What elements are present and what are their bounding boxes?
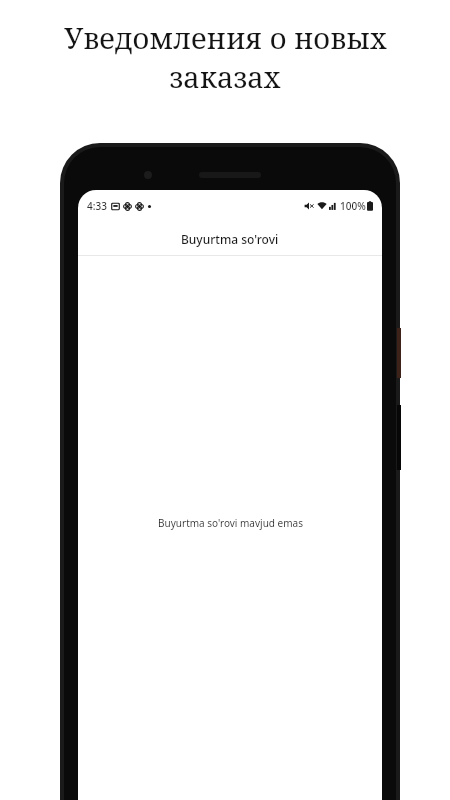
staticText: Уведомления о новых bbox=[64, 18, 387, 57]
staticText: заказах bbox=[169, 57, 281, 96]
staticText: 4:33 bbox=[87, 199, 107, 213]
staticText: Buyurtma so'rovi mavjud emas bbox=[158, 516, 303, 530]
staticText: 100% bbox=[340, 199, 366, 213]
staticText: Buyurtma so'rovi bbox=[181, 231, 279, 247]
